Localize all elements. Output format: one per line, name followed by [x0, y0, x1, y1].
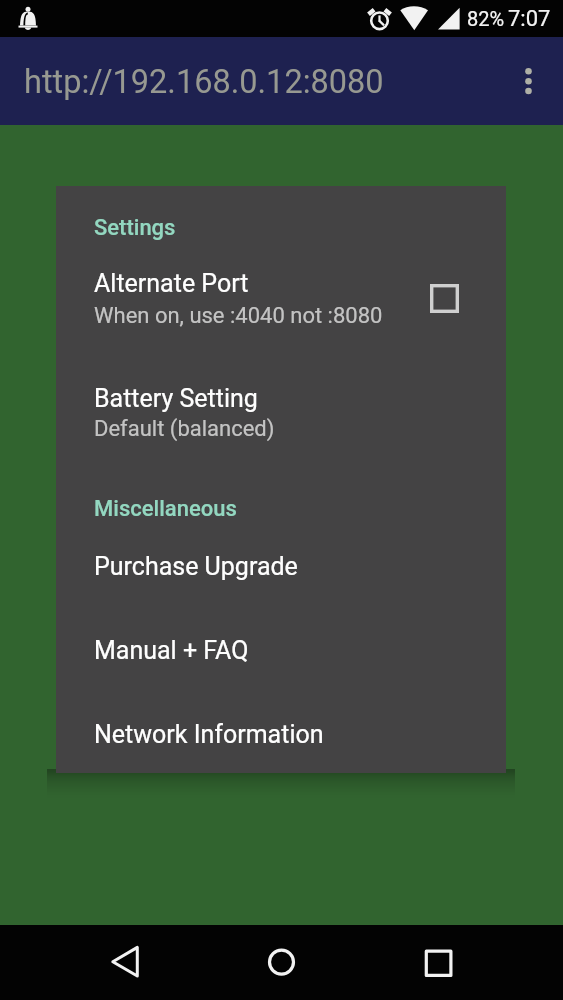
- button[interactable]: Battery Setting: [56, 368, 506, 450]
- staticText: Battery Setting: [94, 384, 258, 413]
- button[interactable]: Back: [90, 925, 160, 1000]
- staticText: Network Information: [94, 720, 324, 749]
- staticText: http://192.168.0.12:8080: [24, 63, 384, 101]
- other: Notification: [17, 4, 41, 28]
- staticText: When on, use :4040 not :8080: [94, 303, 383, 329]
- button[interactable]: Alternate Port: [56, 253, 506, 339]
- button[interactable]: Purchase Upgrade: [56, 536, 506, 594]
- button[interactable]: Recent apps: [403, 925, 473, 1000]
- staticText: Default (balanced): [94, 416, 275, 442]
- button[interactable]: Home: [246, 925, 316, 1000]
- other: Alternate port checkbox: [430, 284, 459, 313]
- button[interactable]: Manual + FAQ: [56, 620, 506, 678]
- staticText: 82%: [467, 7, 505, 30]
- staticText: Settings: [94, 215, 176, 241]
- staticText: 7:07: [508, 6, 551, 32]
- staticText: Purchase Upgrade: [94, 552, 298, 581]
- staticText: Miscellaneous: [94, 496, 237, 522]
- staticText: Alternate Port: [94, 269, 249, 298]
- button[interactable]: Network Information: [56, 704, 506, 762]
- staticText: Manual + FAQ: [94, 636, 249, 665]
- button[interactable]: More options: [502, 37, 563, 125]
